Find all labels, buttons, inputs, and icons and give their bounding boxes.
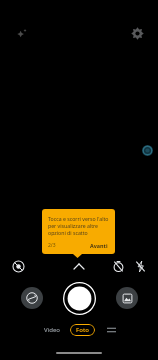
- button[interactable]: Foto: [70, 324, 95, 336]
- staticText: Video: [44, 326, 60, 334]
- button[interactable]: Timer disattivato: [108, 256, 128, 276]
- button[interactable]: Avanti: [89, 241, 109, 250]
- button[interactable]: Scatta foto: [63, 282, 96, 315]
- button[interactable]: Video: [39, 324, 65, 336]
- button[interactable]: Galleria: [116, 287, 138, 309]
- button[interactable]: Altre opzioni: [70, 257, 88, 275]
- button[interactable]: Tocca e scorri verso l'alto per visualiz…: [42, 209, 115, 254]
- staticText: Tocca e scorri verso l'alto per visualiz…: [48, 215, 109, 236]
- staticText: Avanti: [90, 242, 108, 249]
- button[interactable]: Flash disattivato: [130, 256, 150, 276]
- button[interactable]: Impostazioni: [126, 22, 148, 44]
- button[interactable]: Effetti: [10, 22, 32, 44]
- staticText: 2/3: [48, 242, 56, 249]
- button[interactable]: Cambia fotocamera: [21, 287, 43, 309]
- staticText: Foto: [76, 326, 89, 334]
- button[interactable]: Filtri: [8, 256, 28, 276]
- button[interactable]: Altre modalità: [103, 323, 119, 337]
